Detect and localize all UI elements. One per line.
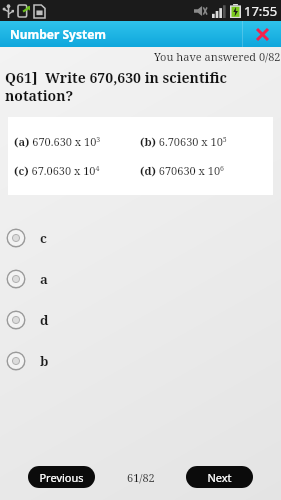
staticText: c bbox=[40, 229, 47, 247]
button[interactable]: Close bbox=[243, 21, 281, 47]
button[interactable]: b bbox=[0, 340, 281, 381]
staticText: (d) 670630 x 106 bbox=[140, 163, 267, 178]
button[interactable]: Previous bbox=[28, 466, 95, 488]
staticText: Number System bbox=[10, 26, 107, 42]
staticText: Next bbox=[207, 470, 232, 485]
button[interactable]: d bbox=[0, 299, 281, 340]
staticText: (a) 670.630 x 103 bbox=[14, 134, 140, 149]
staticText: You have answered 0/82 bbox=[154, 49, 281, 64]
button[interactable]: a bbox=[0, 258, 281, 299]
staticText: Previous bbox=[39, 470, 84, 485]
staticText: 17:55 bbox=[244, 2, 278, 20]
staticText: (b) 6.70630 x 105 bbox=[140, 134, 267, 149]
staticText: a bbox=[40, 270, 48, 288]
staticText: Q61] Write 670,630 in scientific notatio… bbox=[5, 68, 251, 105]
staticText: (c) 67.0630 x 104 bbox=[14, 163, 140, 178]
staticText: 61/82 bbox=[127, 470, 155, 485]
staticText: d bbox=[40, 311, 49, 329]
staticText: b bbox=[40, 352, 49, 370]
button[interactable]: c bbox=[0, 217, 281, 258]
button[interactable]: Next bbox=[186, 466, 253, 488]
